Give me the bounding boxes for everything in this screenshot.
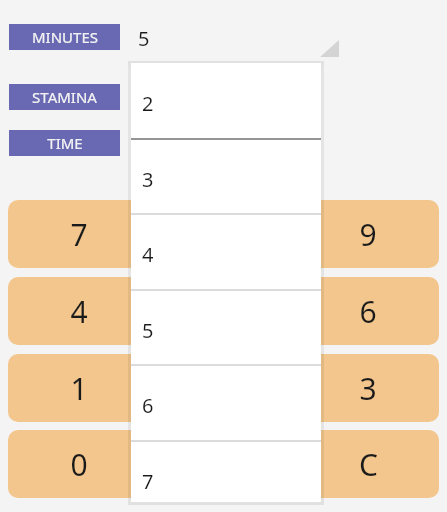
staticText: 2: [142, 90, 154, 117]
staticText: 3: [359, 368, 377, 409]
staticText: 4: [70, 291, 88, 332]
staticText: TIME: [47, 133, 83, 153]
button[interactable]: 7: [8, 200, 150, 268]
staticText: 3: [142, 166, 154, 193]
button[interactable]: 2: [153, 354, 295, 422]
button[interactable]: STAMINA: [9, 84, 120, 110]
button[interactable]: C: [297, 430, 439, 498]
staticText: 5: [138, 25, 150, 52]
button[interactable]: 0: [8, 430, 150, 498]
button[interactable]: 6: [297, 277, 439, 345]
button[interactable]: 5: [131, 290, 321, 366]
button[interactable]: TIME: [9, 130, 120, 156]
other: Open dropdown: [320, 40, 339, 57]
button[interactable]: 3: [297, 354, 439, 422]
staticText: 0: [70, 444, 88, 485]
button[interactable]: 6: [131, 365, 321, 441]
button[interactable]: 9: [297, 200, 439, 268]
staticText: 7: [142, 468, 154, 495]
staticText: 6: [359, 291, 377, 332]
button[interactable]: MINUTES: [9, 24, 120, 50]
button[interactable]: 7: [131, 441, 321, 512]
staticText: 6: [142, 392, 154, 419]
button[interactable]: 1: [8, 354, 150, 422]
button[interactable]: 3: [131, 139, 321, 215]
staticText: C: [359, 444, 378, 485]
staticText: MINUTES: [32, 27, 98, 47]
button[interactable]: 8: [153, 200, 295, 268]
staticText: 5: [142, 317, 154, 344]
button[interactable]: .: [153, 430, 295, 498]
staticText: 7: [70, 214, 88, 255]
staticText: 1: [70, 368, 88, 409]
button[interactable]: 5: [153, 277, 295, 345]
staticText: 9: [359, 214, 377, 255]
staticText: STAMINA: [32, 87, 97, 107]
button[interactable]: 4: [8, 277, 150, 345]
button[interactable]: 2: [131, 63, 321, 139]
staticText: 4: [142, 241, 154, 268]
button[interactable]: 5: [131, 20, 338, 58]
staticText: 8: [215, 214, 233, 255]
button[interactable]: 4: [131, 214, 321, 290]
